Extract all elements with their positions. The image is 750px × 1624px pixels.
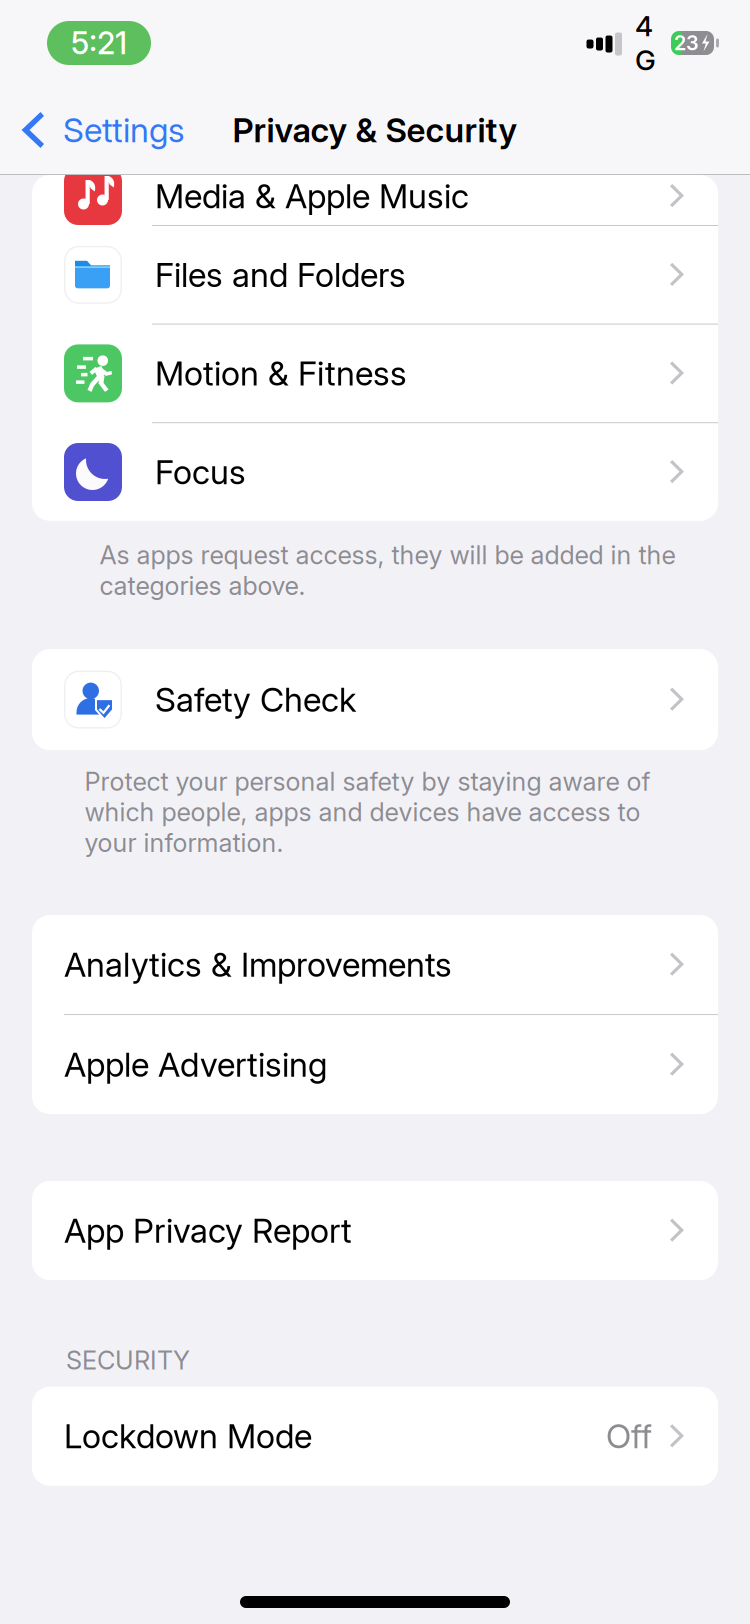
staticText: Media & Apple Music <box>155 176 469 216</box>
staticText: 5:21 <box>71 24 127 61</box>
button[interactable]: Media & Apple Music <box>32 175 718 225</box>
staticText: SECURITY <box>66 1345 190 1376</box>
staticText: Safety Check <box>155 679 356 720</box>
button[interactable]: Settings <box>0 86 185 174</box>
staticText: Analytics & Improvements <box>64 944 452 985</box>
button[interactable]: App Privacy Report <box>32 1181 718 1280</box>
button[interactable]: Motion & Fitness <box>32 325 718 422</box>
staticText: Protect your personal safety by staying … <box>84 766 650 858</box>
staticText: Focus <box>155 452 246 492</box>
staticText: Privacy & Security <box>232 110 517 150</box>
button[interactable]: Safety Check <box>32 649 718 750</box>
button[interactable]: Focus <box>32 423 718 521</box>
button[interactable]: Analytics & Improvements <box>32 915 718 1014</box>
staticText: Apple Advertising <box>64 1044 327 1085</box>
staticText: Off <box>606 1416 652 1456</box>
button[interactable]: Files and Folders <box>32 226 718 324</box>
button[interactable]: Lockdown Mode <box>32 1387 718 1486</box>
staticText: 4G <box>635 9 656 77</box>
staticText: As apps request access, they will be add… <box>99 540 675 601</box>
staticText: Files and Folders <box>155 255 406 295</box>
staticText: Settings <box>63 110 185 150</box>
staticText: Motion & Fitness <box>155 353 407 393</box>
staticText: App Privacy Report <box>64 1210 352 1251</box>
staticText: 23 <box>674 31 699 55</box>
staticText: Lockdown Mode <box>64 1416 312 1456</box>
button[interactable]: Apple Advertising <box>32 1015 718 1114</box>
